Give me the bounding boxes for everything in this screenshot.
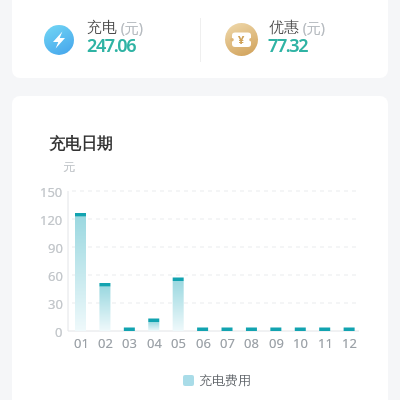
staticText: 充电 (87, 18, 117, 37)
staticText: 03 (122, 334, 137, 348)
staticText: 77.32 (268, 33, 308, 58)
staticText: 10 (293, 334, 308, 348)
staticText: 元 (63, 159, 75, 174)
staticText: 05 (171, 334, 186, 348)
staticText: 30 (48, 295, 63, 311)
staticText: 02 (98, 334, 113, 348)
staticText: 01 (74, 334, 89, 348)
staticText: 247.06 (87, 33, 136, 58)
staticText: 优惠 (269, 18, 299, 37)
staticText: (元) (117, 18, 144, 37)
staticText: 150 (40, 183, 63, 199)
staticText: 08 (244, 334, 259, 348)
staticText: 11 (318, 334, 333, 348)
staticText: 12 (342, 334, 357, 348)
staticText: 07 (220, 334, 235, 348)
staticText: 04 (147, 334, 162, 348)
staticText: 60 (48, 267, 63, 283)
staticText: 90 (48, 239, 63, 255)
staticText: 120 (40, 211, 63, 227)
button[interactable] (12, 96, 388, 400)
button[interactable]: 充电费用 (183, 372, 251, 388)
staticText: (元) (299, 18, 326, 37)
staticText: 充电日期 (49, 134, 113, 154)
staticText: 0 (55, 323, 63, 339)
staticText: 充电费用 (199, 372, 251, 388)
button[interactable] (12, 0, 388, 78)
staticText: 09 (269, 334, 284, 348)
staticText: ¥ (238, 32, 245, 47)
staticText: 06 (196, 334, 211, 348)
